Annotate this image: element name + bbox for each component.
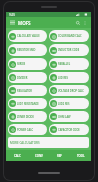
- staticText: RESISTOR SMD: [17, 48, 36, 52]
- button[interactable]: CALC: [6, 150, 28, 161]
- staticText: CONV: [35, 154, 43, 158]
- staticText: OHM LAW: [58, 115, 71, 119]
- button[interactable]: Search: [74, 19, 81, 26]
- staticText: INDUCTOR CODE: [58, 48, 80, 52]
- staticText: VOLTAGE DROP CALC: [58, 89, 85, 93]
- staticText: SERIES: [17, 62, 26, 66]
- staticText: REF: [57, 154, 62, 158]
- button[interactable]: CALCULATE VALUE: [8, 30, 47, 42]
- staticText: CALCULATE VALUE: [17, 34, 40, 38]
- button[interactable]: MORE CALCULATORS: [8, 137, 89, 148]
- staticText: COLOR BAND CALC: [58, 34, 82, 38]
- staticText: PARALLEL: [58, 62, 71, 66]
- button[interactable]: OHM LAW: [49, 111, 89, 122]
- staticText: ZENER DIODE: [17, 115, 34, 119]
- staticText: DIVIDER: [17, 76, 28, 80]
- staticText: LED1 RESISTANCE: [17, 102, 39, 106]
- staticText: CALC: [14, 154, 21, 158]
- staticText: POWER CALC: [17, 128, 34, 132]
- staticText: MOFS: [18, 20, 31, 26]
- button[interactable]: LED2 RES: [49, 98, 89, 109]
- staticText: REGULATOR: [17, 89, 32, 93]
- button[interactable]: More options: [81, 19, 88, 26]
- button[interactable]: Open navigation menu: [9, 19, 16, 26]
- button[interactable]: INDUCTOR CODE: [49, 44, 89, 56]
- staticText: LED2 RES: [58, 102, 70, 106]
- button[interactable]: LED1 RESISTANCE: [8, 98, 47, 109]
- button[interactable]: COLOR BAND CALC: [49, 30, 89, 42]
- button[interactable]: PARALLEL: [49, 58, 89, 70]
- staticText: CAPACITOR CODE: [58, 128, 80, 132]
- button[interactable]: DIVIDER: [8, 72, 47, 83]
- button[interactable]: VOLTAGE DROP CALC: [49, 85, 89, 96]
- button[interactable]: ZENER DIODE: [8, 111, 47, 122]
- staticText: TOOL: [77, 154, 85, 158]
- staticText: LED RES: [58, 76, 68, 80]
- staticText: 9:25: [9, 13, 15, 17]
- button[interactable]: RESISTOR SMD: [8, 44, 47, 56]
- button[interactable]: TOOL: [70, 150, 91, 161]
- button[interactable]: POWER CALC: [8, 124, 47, 135]
- button[interactable]: SERIES: [8, 58, 47, 70]
- staticText: MORE CALCULATORS: [10, 141, 40, 145]
- button[interactable]: CONV: [28, 150, 49, 161]
- button[interactable]: REGULATOR: [8, 85, 47, 96]
- button[interactable]: REF: [49, 150, 70, 161]
- button[interactable]: CAPACITOR CODE: [49, 124, 89, 135]
- button[interactable]: LED RES: [49, 72, 89, 83]
